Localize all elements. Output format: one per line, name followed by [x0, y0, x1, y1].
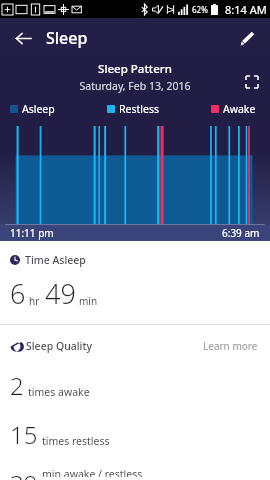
button[interactable]: Time Asleep [0, 241, 270, 324]
staticText: 11:11 pm [10, 226, 54, 240]
staticText: min awake / restless [42, 467, 143, 477]
button[interactable]: Learn more [201, 337, 260, 355]
staticText: Sleep [46, 27, 88, 49]
staticText: Saturday, Feb 13, 2016 [79, 79, 191, 93]
staticText: Sleep Pattern [98, 61, 172, 77]
button[interactable]: Expand to fullscreen [240, 70, 264, 94]
staticText: 49 [45, 275, 76, 312]
button[interactable]: Back [8, 23, 38, 53]
staticText: 6:39 am [222, 226, 260, 240]
staticText: Asleep [22, 102, 55, 116]
staticText: hr [29, 294, 40, 308]
staticText: 62% [192, 4, 208, 15]
staticText: Learn more [203, 339, 258, 353]
staticText: 15 [10, 418, 38, 451]
staticText: Restless [119, 102, 159, 116]
staticText: times restless [42, 434, 110, 448]
staticText: 39 [10, 467, 38, 480]
staticText: Time Asleep [25, 253, 86, 267]
staticText: 6 [10, 275, 26, 312]
button[interactable]: Edit [232, 23, 262, 53]
staticText: Awake [223, 102, 256, 116]
staticText: Sleep Quality [26, 339, 92, 353]
staticText: 8:14 AM [225, 2, 267, 17]
staticText: 2 [10, 369, 24, 402]
staticText: times awake [28, 385, 90, 399]
staticText: min [79, 294, 98, 308]
